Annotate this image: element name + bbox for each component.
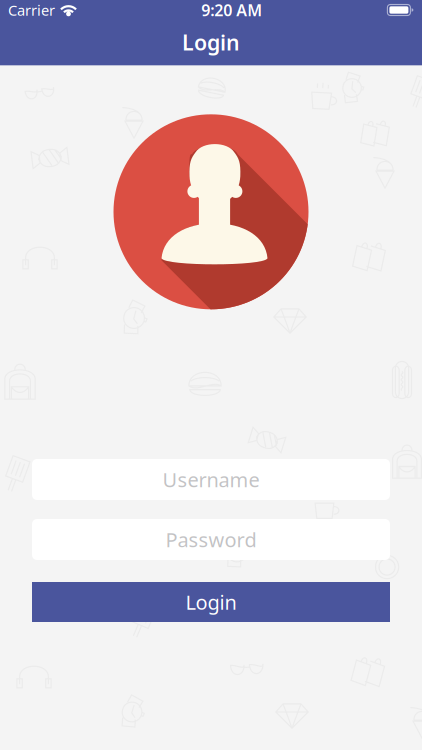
staticText: Carrier [8, 0, 55, 20]
staticText: Login [182, 28, 240, 56]
button[interactable]: Login [32, 582, 390, 622]
staticText: 9:20 AM [201, 0, 262, 21]
staticText: Username [162, 466, 259, 493]
staticText: Password [165, 526, 256, 553]
staticText: Login [185, 589, 236, 615]
